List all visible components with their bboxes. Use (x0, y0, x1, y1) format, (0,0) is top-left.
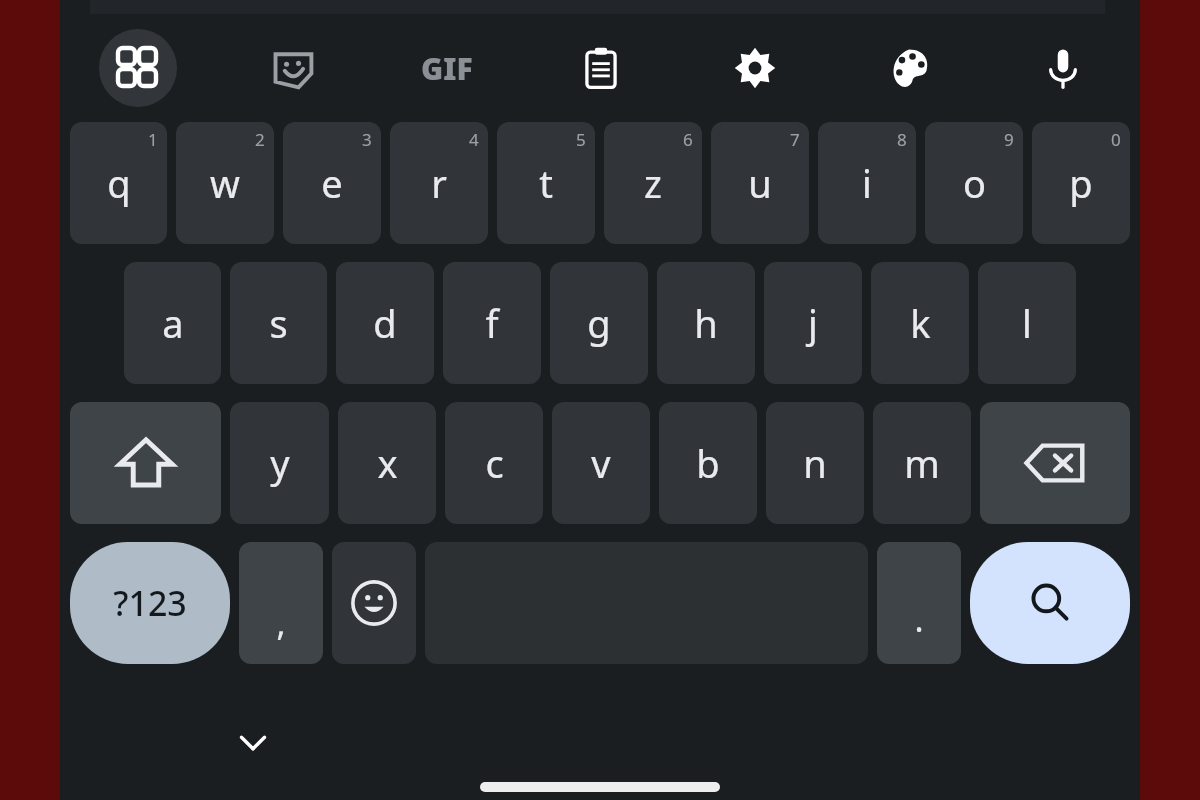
staticText: o (963, 157, 986, 209)
staticText: 6 (683, 128, 693, 151)
staticText: c (485, 437, 504, 489)
staticText: g (587, 297, 611, 349)
button[interactable]: Search (970, 542, 1130, 664)
button[interactable]: l (978, 262, 1076, 384)
button[interactable]: , (239, 542, 323, 664)
staticText: m (904, 437, 940, 489)
button[interactable]: Backspace (980, 402, 1130, 524)
button[interactable]: Emoji (332, 542, 416, 664)
button[interactable]: e (283, 122, 381, 244)
staticText: d (373, 297, 397, 349)
staticText: , (276, 600, 286, 646)
staticText: h (694, 297, 718, 349)
staticText: u (748, 157, 772, 209)
button[interactable]: t (497, 122, 595, 244)
staticText: f (485, 297, 499, 349)
staticText: p (1069, 157, 1093, 209)
staticText: GIF (421, 48, 473, 89)
button[interactable]: i (818, 122, 916, 244)
button[interactable]: GIF (370, 14, 524, 122)
button[interactable]: f (443, 262, 541, 384)
button[interactable]: Settings (678, 14, 832, 122)
button[interactable]: p (1032, 122, 1130, 244)
button[interactable]: ?123 (70, 542, 230, 664)
staticText: 7 (790, 128, 800, 151)
button[interactable]: Voice input (986, 14, 1140, 122)
staticText: x (377, 437, 398, 489)
staticText: a (162, 297, 184, 349)
staticText: b (696, 437, 720, 489)
staticText: v (591, 437, 611, 489)
staticText: l (1022, 297, 1032, 349)
button[interactable]: u (711, 122, 809, 244)
staticText: 0 (1111, 128, 1121, 151)
button[interactable]: h (657, 262, 755, 384)
staticText: 2 (255, 128, 265, 151)
staticText: y (270, 437, 290, 489)
button[interactable]: b (659, 402, 757, 524)
staticText: e (321, 157, 343, 209)
button[interactable]: q (70, 122, 167, 244)
button[interactable]: z (604, 122, 702, 244)
button[interactable]: j (764, 262, 862, 384)
staticText: 9 (1004, 128, 1014, 151)
staticText: z (644, 157, 662, 209)
staticText: n (803, 437, 827, 489)
staticText: w (210, 157, 240, 209)
button[interactable]: c (445, 402, 543, 524)
button[interactable]: a (124, 262, 221, 384)
button[interactable]: m (873, 402, 971, 524)
staticText: r (431, 157, 447, 209)
staticText: 1 (148, 128, 158, 151)
button[interactable]: . (877, 542, 961, 664)
staticText: j (808, 297, 818, 349)
button[interactable]: k (871, 262, 969, 384)
button[interactable]: w (176, 122, 274, 244)
button[interactable]: s (230, 262, 327, 384)
button[interactable]: o (925, 122, 1023, 244)
button[interactable]: Toolbar (99, 29, 177, 107)
staticText: 4 (469, 128, 479, 151)
button[interactable]: Hide keyboard (225, 714, 281, 770)
button[interactable]: Clipboard (524, 14, 678, 122)
staticText: 3 (362, 128, 372, 151)
button[interactable]: Stickers (215, 14, 370, 122)
button[interactable]: Shift (70, 402, 221, 524)
staticText: . (914, 596, 924, 642)
staticText: k (910, 297, 931, 349)
button[interactable]: n (766, 402, 864, 524)
button[interactable]: g (550, 262, 648, 384)
button[interactable]: r (390, 122, 488, 244)
staticText: 8 (897, 128, 907, 151)
button[interactable]: d (336, 262, 434, 384)
staticText: q (107, 157, 131, 209)
staticText: i (862, 157, 872, 209)
button[interactable]: v (552, 402, 650, 524)
staticText: t (539, 157, 553, 209)
staticText: s (269, 297, 288, 349)
button[interactable]: y (230, 402, 329, 524)
button[interactable]: x (338, 402, 436, 524)
button[interactable]: Themes (832, 14, 986, 122)
staticText: ?123 (113, 580, 187, 626)
staticText: 5 (576, 128, 586, 151)
